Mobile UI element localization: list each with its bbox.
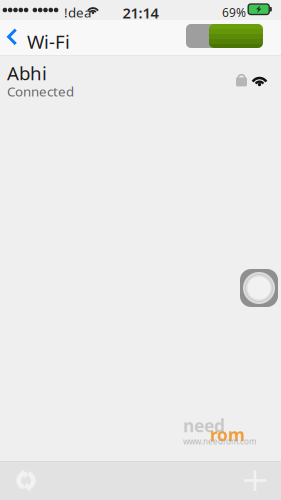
staticText: rom — [210, 423, 245, 446]
staticText: !dea — [64, 3, 91, 21]
staticText: Abhi — [7, 60, 47, 85]
staticText: Wi-Fi — [27, 29, 70, 54]
button[interactable]: AssistiveTouch — [240, 269, 278, 307]
staticText: need — [183, 414, 225, 437]
staticText: Connected — [7, 82, 74, 100]
button[interactable]: Add network — [229, 461, 281, 500]
button[interactable]: Abhi — [0, 55, 281, 103]
button[interactable]: Wi-Fi — [0, 20, 80, 55]
staticText: 69% — [222, 4, 246, 20]
staticText: 21:14 — [122, 3, 158, 22]
button[interactable]: Refresh — [0, 461, 52, 500]
staticText: www.needrom.com — [183, 436, 256, 447]
